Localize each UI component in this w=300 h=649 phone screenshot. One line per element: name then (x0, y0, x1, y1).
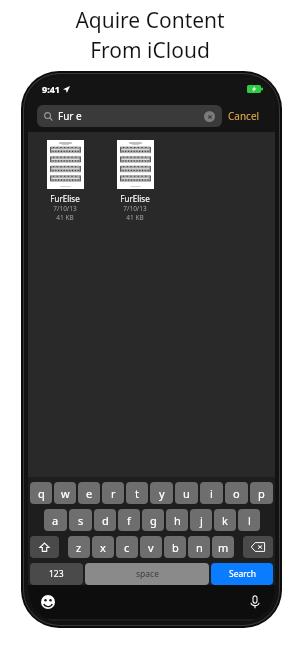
button[interactable]: b (164, 536, 186, 558)
button[interactable]: v (140, 536, 162, 558)
staticText: k (222, 513, 228, 528)
staticText: e (86, 486, 93, 501)
button[interactable]: p (250, 482, 273, 504)
staticText: Fur e (58, 109, 82, 123)
staticText: d (102, 513, 109, 528)
button[interactable]: 123 (30, 563, 83, 585)
button[interactable]: f (118, 509, 140, 531)
button[interactable]: i (200, 482, 223, 504)
button[interactable]: y (150, 482, 173, 504)
staticText: v (148, 540, 154, 555)
button[interactable]: Dictate (247, 594, 263, 610)
staticText: 7/10/13 (53, 204, 77, 213)
button[interactable]: s (69, 509, 92, 531)
button[interactable]: m (212, 536, 234, 558)
staticText: t (135, 486, 139, 501)
button[interactable]: u (175, 482, 198, 504)
staticText: FurElise (50, 193, 80, 204)
button[interactable]: FurElise (42, 140, 88, 222)
button[interactable]: Shift (30, 536, 59, 558)
button[interactable]: Emoji (40, 594, 56, 610)
staticText: Search (229, 568, 256, 580)
button[interactable]: g (142, 509, 164, 531)
button[interactable]: Cancel (222, 106, 266, 126)
button[interactable]: Clear search (204, 111, 215, 122)
button[interactable]: FurElise (112, 140, 158, 222)
staticText: 7/10/13 (123, 204, 147, 213)
staticText: p (258, 486, 265, 501)
button[interactable]: space (85, 563, 209, 585)
staticText: w (61, 486, 70, 501)
staticText: z (76, 540, 82, 555)
button[interactable]: o (225, 482, 248, 504)
staticText: o (233, 486, 240, 501)
staticText: r (111, 486, 116, 501)
staticText: m (218, 540, 229, 555)
staticText: h (174, 513, 181, 528)
button[interactable]: e (78, 482, 100, 504)
button[interactable]: z (68, 536, 90, 558)
staticText: 123 (49, 568, 64, 580)
button[interactable]: t (126, 482, 148, 504)
staticText: g (150, 513, 157, 528)
button[interactable]: c (116, 536, 138, 558)
button[interactable]: x (92, 536, 114, 558)
button[interactable]: a (44, 509, 67, 531)
staticText: f (127, 513, 131, 528)
button[interactable]: h (166, 509, 188, 531)
button[interactable]: r (102, 482, 124, 504)
button[interactable]: Search (211, 563, 273, 585)
staticText: l (248, 513, 251, 528)
button[interactable]: w (54, 482, 76, 504)
staticText: 41 KB (126, 213, 144, 222)
staticText: 41 KB (56, 213, 74, 222)
button[interactable]: n (188, 536, 210, 558)
button[interactable]: k (214, 509, 236, 531)
staticText: u (183, 486, 190, 501)
staticText: Cancel (228, 109, 260, 123)
staticText: s (78, 513, 84, 528)
button[interactable]: Fur e (37, 105, 222, 127)
staticText: From iCloud (90, 36, 210, 65)
staticText: i (210, 486, 213, 501)
staticText: FurElise (120, 193, 150, 204)
staticText: c (124, 540, 130, 555)
staticText: space (136, 568, 159, 580)
button[interactable]: l (238, 509, 260, 531)
staticText: a (52, 513, 59, 528)
button[interactable]: d (94, 509, 116, 531)
staticText: 9:41 (42, 83, 60, 95)
button[interactable]: q (30, 482, 52, 504)
staticText: y (159, 486, 165, 501)
button[interactable]: Delete (243, 536, 273, 558)
staticText: x (100, 540, 106, 555)
staticText: j (200, 513, 203, 528)
staticText: Aquire Content (75, 6, 225, 35)
button[interactable]: j (190, 509, 212, 531)
staticText: b (172, 540, 179, 555)
staticText: q (38, 486, 45, 501)
staticText: n (196, 540, 203, 555)
